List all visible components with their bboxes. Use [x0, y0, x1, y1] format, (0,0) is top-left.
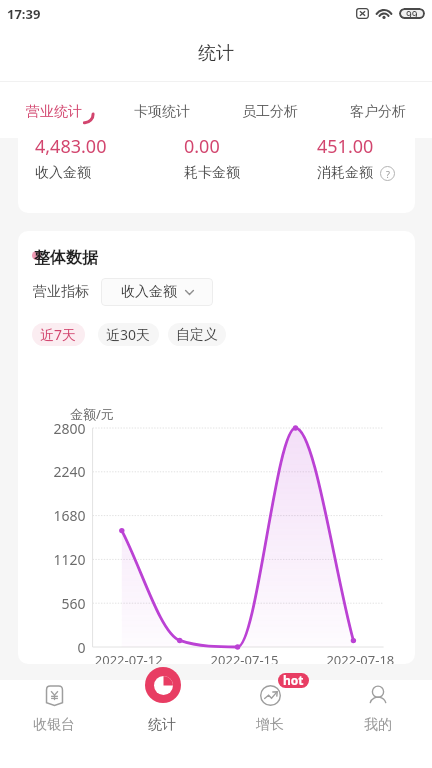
staticText: 99	[406, 8, 418, 19]
staticText: 消耗金额	[317, 164, 373, 182]
button[interactable]: 收银台	[0, 680, 108, 768]
button[interactable]: 营业统计	[0, 82, 108, 136]
button[interactable]: 帮助说明	[380, 166, 395, 181]
button[interactable]: 统计	[145, 667, 181, 703]
button[interactable]: 收入金额	[101, 278, 213, 306]
staticText: 增长	[256, 716, 284, 734]
staticText: 我的	[364, 716, 392, 734]
staticText: 金额/元	[70, 405, 114, 423]
staticText: 17:39	[7, 5, 41, 23]
other: 收银台	[45, 685, 64, 706]
button[interactable]: 卡项统计	[108, 82, 216, 136]
button[interactable]: 近7天	[32, 323, 85, 346]
staticText: 统计	[198, 42, 234, 65]
staticText: 卡项统计	[134, 103, 190, 121]
button[interactable]: 近30天	[98, 323, 159, 346]
staticText: 451.00	[317, 134, 374, 159]
button[interactable]: 增长	[216, 680, 324, 768]
button[interactable]: 我的	[324, 680, 432, 768]
staticText: 收银台	[33, 716, 75, 734]
staticText: 0.00	[184, 134, 220, 159]
staticText: 统计	[148, 716, 176, 734]
other: 增长	[260, 685, 281, 706]
staticText: 耗卡金额	[184, 164, 240, 182]
staticText: 员工分析	[242, 103, 298, 121]
staticText: 整体数据	[34, 248, 98, 268]
button[interactable]: 客户分析	[324, 82, 432, 136]
button[interactable]: 员工分析	[216, 82, 324, 136]
staticText: 近30天	[106, 325, 151, 344]
staticText: 营业指标	[33, 283, 89, 301]
staticText: 近7天	[40, 325, 77, 344]
staticText: ?	[386, 168, 390, 180]
staticText: hot	[283, 673, 304, 687]
other: 我的	[368, 685, 388, 706]
staticText: 4,483.00	[35, 134, 107, 159]
staticText: 自定义	[176, 326, 218, 344]
staticText: 收入金额	[35, 164, 91, 182]
button[interactable]: 自定义	[168, 323, 226, 346]
staticText: 收入金额	[121, 283, 177, 301]
button[interactable]: 统计	[108, 680, 216, 768]
staticText: 客户分析	[350, 103, 406, 121]
staticText: 营业统计	[26, 103, 82, 121]
